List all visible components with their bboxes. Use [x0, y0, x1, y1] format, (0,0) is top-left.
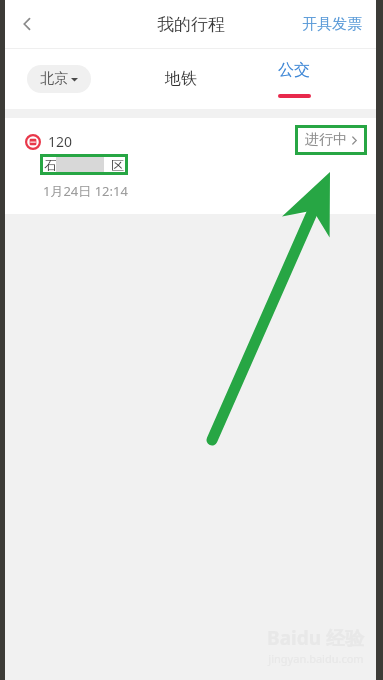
button[interactable]: 北京 [27, 65, 91, 93]
staticText: Baidu 经验 [267, 625, 364, 651]
staticText: 区 [111, 157, 124, 172]
button[interactable]: 120 [5, 118, 376, 214]
staticText: jingyan.baidu.com [268, 651, 364, 666]
staticText: 北京 [40, 70, 68, 88]
staticText: 120 [48, 132, 73, 151]
button[interactable]: 进行中 [295, 125, 367, 155]
staticText: 石 [44, 157, 57, 172]
button[interactable]: 公交 [268, 60, 320, 98]
button[interactable]: Back [5, 2, 49, 46]
staticText: 公交 [278, 60, 310, 80]
staticText: 进行中 [305, 131, 347, 149]
button[interactable]: 地铁 [155, 59, 207, 99]
staticText: 开具发票 [302, 15, 362, 34]
staticText: 地铁 [165, 69, 197, 89]
button[interactable]: 开具发票 [296, 7, 368, 42]
staticText: 1月24日 12:14 [43, 182, 128, 200]
staticText: 我的行程 [157, 14, 225, 35]
